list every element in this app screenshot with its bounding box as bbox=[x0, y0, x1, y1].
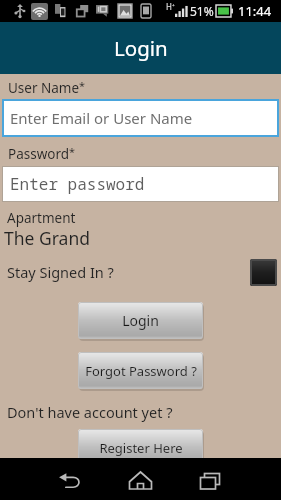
staticText: Register Here bbox=[99, 439, 183, 457]
button[interactable]: Recent apps bbox=[180, 460, 240, 500]
staticText: Enter Email or User Name bbox=[10, 108, 193, 128]
staticText: Apartment bbox=[7, 209, 76, 227]
button[interactable]: Enter Email or User Name bbox=[2, 99, 279, 137]
staticText: Enter password bbox=[10, 173, 145, 195]
staticText: User Name* bbox=[8, 78, 86, 97]
staticText: Login bbox=[122, 311, 159, 330]
staticText: Forgot Password ? bbox=[85, 362, 197, 380]
staticText: Password* bbox=[8, 144, 76, 163]
staticText: 51% bbox=[190, 3, 214, 19]
staticText: Don't have account yet ? bbox=[7, 402, 173, 422]
button[interactable]: Stay Signed In checkbox bbox=[250, 259, 277, 286]
staticText: H⁺ bbox=[166, 1, 175, 12]
button[interactable]: Enter password bbox=[2, 166, 279, 202]
staticText: The Grand bbox=[4, 226, 90, 250]
button[interactable]: Register Here bbox=[78, 429, 203, 466]
staticText: Login bbox=[114, 34, 168, 62]
staticText: 11:44 bbox=[238, 2, 272, 20]
button[interactable]: Home bbox=[110, 459, 170, 500]
button[interactable]: Forgot Password ? bbox=[78, 352, 203, 389]
staticText: Stay Signed In ? bbox=[7, 262, 114, 282]
button[interactable]: Login bbox=[78, 302, 203, 339]
button[interactable]: Back bbox=[40, 460, 100, 500]
